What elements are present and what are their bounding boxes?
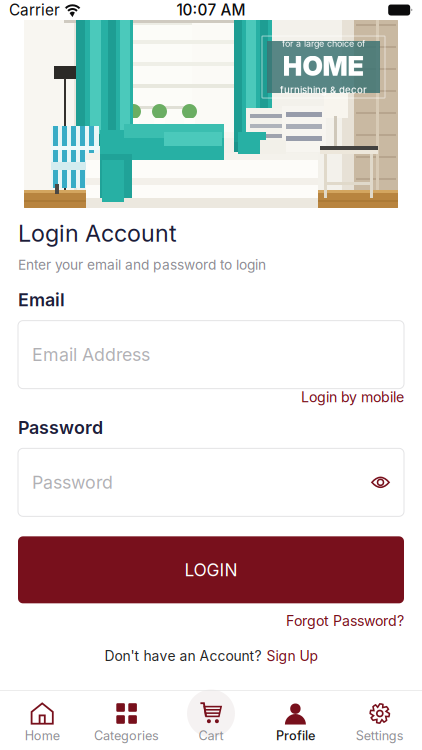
staticText: 10:07 AM [176,1,245,19]
button[interactable]: Show password [371,473,390,491]
staticText: for a large choice of [282,38,365,49]
staticText: Forgot Password? [286,612,404,629]
staticText: Profile [276,728,315,743]
staticText: HOME [282,50,364,82]
staticText: Settings [356,728,404,743]
staticText: Email [18,289,65,311]
button[interactable]: Cart [169,690,253,750]
staticText: Cart [198,728,223,743]
staticText: Password [32,472,113,493]
button[interactable]: Forgot Password? [286,603,404,634]
staticText: Password [18,417,103,438]
button[interactable]: Login by mobile [301,389,404,410]
staticText: Sign Up [266,647,317,664]
staticText: Email Address [32,344,150,365]
staticText: Login Account [18,219,177,247]
staticText: Categories [94,728,159,743]
staticText: furnishing & decor [280,84,367,96]
staticText: Login by mobile [301,389,404,406]
staticText: Don't have an Account? [104,647,261,664]
staticText: LOGIN [184,559,237,580]
staticText: Carrier [9,1,60,19]
button[interactable]: Categories [84,690,169,750]
button[interactable]: Profile [253,690,338,750]
button[interactable]: LOGIN [18,536,404,603]
button[interactable]: Settings [338,690,422,750]
staticText: Enter your email and password to login [18,256,266,273]
button[interactable]: Home [0,690,84,750]
staticText: Home [25,728,60,743]
button[interactable]: Sign Up [266,647,317,664]
